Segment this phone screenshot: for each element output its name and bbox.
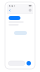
staticText: 9:41 — [9, 4, 16, 7]
button[interactable]: Your message — [14, 31, 27, 35]
button[interactable]: Message from Alex — [9, 16, 20, 20]
button[interactable]: Contact info — [28, 7, 31, 13]
staticText: < — [8, 7, 10, 13]
button[interactable]: Send — [26, 61, 31, 65]
button[interactable]: Back — [8, 7, 12, 13]
